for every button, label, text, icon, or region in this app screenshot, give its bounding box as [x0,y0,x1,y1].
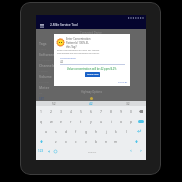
button[interactable]: Emoji [46,146,52,156]
staticText: Enter Concentration [66,37,91,41]
button[interactable]: 9 [116,106,126,116]
button[interactable]: o [116,116,126,126]
staticText: 42 [89,102,93,106]
button[interactable]: s [51,126,61,136]
button[interactable]: 52 [36,101,72,106]
button[interactable]: q [36,116,46,126]
staticText: LOG [39,112,46,116]
staticText: c [75,139,77,144]
staticText: d [65,129,68,134]
staticText: o [120,119,123,124]
staticText: r [70,119,72,124]
staticText: Enter concentration in Parts Per Million… [57,49,100,52]
staticText: Channels [39,63,55,68]
button[interactable]: h [91,126,101,136]
button[interactable]: k [111,126,121,136]
staticText: Volume [39,74,52,79]
staticText: Pattern(s) 100%-EL [66,41,89,45]
button[interactable]: b [91,136,101,146]
staticText: 3 [60,109,62,114]
button[interactable]: c [71,136,81,146]
button[interactable]: Language [52,146,58,156]
button[interactable]: 8 [106,106,116,116]
button[interactable]: l [121,126,131,136]
staticText: y [90,119,92,124]
button[interactable]: d [61,126,71,136]
button[interactable]: Space [58,146,126,156]
staticText: 123 [38,149,44,153]
staticText: i [111,119,112,124]
staticText: n [105,139,108,144]
staticText: a [45,129,47,134]
staticText: Value concentration will be 42 ppm/4.2% [67,67,117,71]
button[interactable]: Previous [126,146,136,156]
staticText: v [85,139,87,144]
staticText: e [60,119,62,124]
staticText: h [95,129,98,134]
button[interactable]: i [106,116,116,126]
staticText: q [40,119,43,124]
button[interactable]: t [76,116,86,126]
staticText: 7 [100,109,102,114]
button[interactable]: Search [136,116,146,126]
staticText: MAKE LIVE [87,73,99,76]
button[interactable]: Backspace [136,106,146,116]
staticText: < [130,149,132,153]
button[interactable]: r [66,116,76,126]
button[interactable]: 42 [72,101,109,106]
staticText: t [80,119,82,124]
staticText: Connected Device [80,31,102,35]
button[interactable]: 4 [66,106,76,116]
button[interactable]: e [56,116,66,126]
button[interactable]: g [81,126,91,136]
staticText: z [55,139,57,144]
staticText: 32 [126,102,130,106]
button[interactable]: m [111,136,121,146]
button[interactable]: y [86,116,96,126]
staticText: 2 [50,109,52,114]
button[interactable]: z [51,136,61,146]
button[interactable]: 7 [96,106,106,116]
staticText: 52 [52,102,56,106]
staticText: Highway Options [81,90,102,94]
staticText: English [88,150,97,153]
staticText: k [115,129,117,134]
button[interactable]: f [71,126,81,136]
button[interactable]: n [101,136,111,146]
button[interactable]: w [46,116,56,126]
button[interactable]: 3 [56,106,66,116]
staticText: SEND [39,108,47,112]
staticText: s [55,129,57,134]
button[interactable]: 1 [36,106,46,116]
button[interactable]: x [61,136,71,146]
staticText: CHANNELS [39,101,56,105]
staticText: g [85,129,88,134]
button[interactable]: Shift [36,136,46,146]
button[interactable]: MAKE LIVE [85,72,100,77]
button[interactable]: Next [136,146,146,156]
button[interactable]: Shift right [126,136,146,146]
button[interactable]: v [81,136,91,146]
button[interactable]: 32 [109,101,146,106]
button[interactable]: 0 [126,106,136,116]
button[interactable]: 5 [76,106,86,116]
button[interactable]: 6 [86,106,96,116]
staticText: Concentration [60,56,76,59]
staticText: > [140,149,142,153]
staticText: x [65,139,67,144]
staticText: CANCEL [118,80,128,83]
button[interactable]: 2 [46,106,56,116]
button[interactable]: 123 [36,146,46,156]
button[interactable]: u [96,116,106,126]
button[interactable]: a [41,126,51,136]
button[interactable]: Return [131,126,146,136]
button[interactable]: CANCEL [115,79,131,84]
button[interactable]: p [126,116,136,126]
button[interactable]: Menu [38,21,46,29]
staticText: this Tag? [66,45,77,49]
button[interactable]: j [101,126,111,136]
staticText: p [130,119,133,124]
staticText: l [126,129,127,134]
